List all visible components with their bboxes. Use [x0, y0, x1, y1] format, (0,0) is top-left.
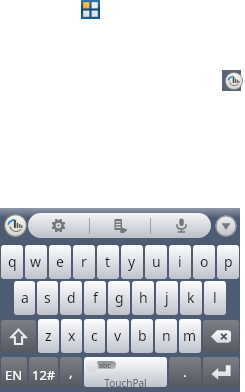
button[interactable]: w: [25, 245, 47, 279]
button[interactable]: u: [145, 245, 167, 279]
button[interactable]: d: [60, 281, 82, 315]
button[interactable]: j: [156, 281, 178, 315]
staticText: h: [139, 288, 148, 307]
staticText: n: [162, 326, 171, 345]
staticText: q: [8, 252, 17, 271]
staticText: TouchPal: [84, 376, 167, 387]
staticText: x: [68, 326, 76, 345]
button[interactable]: Comma: [60, 357, 82, 387]
button[interactable]: f: [84, 281, 106, 315]
staticText: 12#: [32, 366, 56, 384]
button[interactable]: r: [73, 245, 95, 279]
button[interactable]: b: [131, 319, 153, 353]
button[interactable]: p: [217, 245, 239, 279]
button[interactable]: Enter: [203, 357, 239, 387]
staticText: f: [93, 288, 98, 307]
staticText: u: [152, 252, 161, 271]
staticText: g: [115, 288, 124, 307]
staticText: l: [213, 288, 217, 307]
button[interactable]: l: [204, 281, 226, 315]
staticText: ,: [69, 363, 73, 381]
staticText: y: [128, 252, 136, 271]
button[interactable]: z: [38, 319, 59, 353]
button[interactable]: c: [84, 319, 105, 353]
staticText: e: [56, 252, 64, 271]
button[interactable]: Shift: [1, 320, 36, 353]
staticText: .: [183, 363, 187, 381]
staticText: b: [138, 326, 147, 345]
staticText: d: [67, 288, 76, 307]
staticText: w: [30, 252, 42, 271]
button[interactable]: TouchPal: [222, 70, 241, 91]
staticText: o: [200, 252, 209, 271]
button[interactable]: s: [37, 281, 58, 315]
staticText: j: [165, 288, 169, 307]
button[interactable]: x: [61, 319, 82, 353]
button[interactable]: k: [180, 281, 202, 315]
button[interactable]: Voice input: [151, 213, 211, 238]
button[interactable]: q: [1, 245, 23, 279]
button[interactable]: Hide keyboard: [215, 215, 237, 237]
staticText: m: [183, 326, 197, 345]
button[interactable]: y: [121, 245, 143, 279]
button[interactable]: Backspace: [203, 320, 239, 353]
button[interactable]: Apps: [81, 0, 100, 19]
button[interactable]: e: [49, 245, 71, 279]
button[interactable]: Edit: [90, 213, 150, 238]
staticText: a: [21, 288, 29, 307]
staticText: v: [114, 326, 122, 345]
button[interactable]: Space: [84, 357, 167, 387]
staticText: k: [187, 288, 195, 307]
staticText: s: [44, 288, 51, 307]
staticText: p: [224, 252, 233, 271]
button[interactable]: a: [14, 281, 35, 315]
staticText: z: [45, 326, 52, 345]
button[interactable]: g: [108, 281, 130, 315]
button[interactable]: TouchPal menu: [4, 214, 27, 237]
button[interactable]: v: [107, 319, 129, 353]
staticText: t: [105, 252, 111, 271]
button[interactable]: Settings: [28, 213, 89, 238]
button[interactable]: i: [169, 245, 191, 279]
staticText: EN: [5, 366, 23, 384]
staticText: r: [81, 252, 87, 271]
button[interactable]: EN: [1, 357, 27, 387]
staticText: c: [91, 326, 98, 345]
staticText: i: [178, 252, 182, 271]
staticText: abc: [99, 361, 111, 369]
button[interactable]: 12#: [29, 357, 58, 387]
button[interactable]: h: [132, 281, 154, 315]
button[interactable]: t: [97, 245, 119, 279]
button[interactable]: n: [155, 319, 177, 353]
button[interactable]: o: [193, 245, 215, 279]
button[interactable]: Period: [169, 357, 201, 387]
button[interactable]: m: [179, 319, 201, 353]
